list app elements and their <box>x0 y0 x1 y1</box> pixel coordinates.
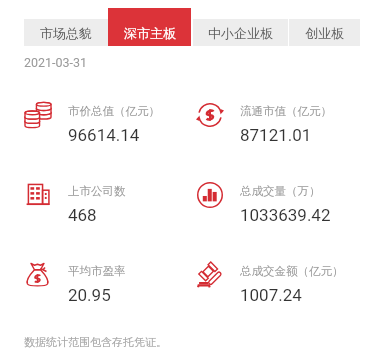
button[interactable]: 中小企业板 <box>193 19 288 46</box>
staticText: 数据统计范围包含存托凭证。 <box>24 335 167 349</box>
staticText: 中小企业板 <box>208 25 273 41</box>
button[interactable]: 市价总值（亿元） <box>24 96 192 152</box>
staticText: 1007.24 <box>240 285 302 305</box>
staticText: 上市公司数 <box>68 184 126 198</box>
staticText: 创业板 <box>305 25 344 41</box>
staticText: 深市主板 <box>124 25 176 41</box>
staticText: 市价总值（亿元） <box>68 104 160 118</box>
staticText: 1033639.42 <box>240 205 331 225</box>
staticText: 平均市盈率 <box>68 264 126 278</box>
button[interactable]: 总成交金额（亿元） <box>196 256 364 312</box>
staticText: 总成交量（万） <box>240 184 321 198</box>
staticText: 96614.14 <box>68 125 140 145</box>
button[interactable]: 深市主板 <box>108 8 191 46</box>
staticText: 市场总貌 <box>40 25 92 41</box>
button[interactable]: 总成交量（万） <box>196 176 364 232</box>
staticText: 2021-03-31 <box>24 55 88 70</box>
staticText: 总成交金额（亿元） <box>240 264 344 278</box>
staticText: 468 <box>68 205 97 225</box>
staticText: 87121.01 <box>240 125 312 145</box>
button[interactable]: 流通市值（亿元） <box>196 96 364 152</box>
staticText: 流通市值（亿元） <box>240 104 332 118</box>
staticText: 20.95 <box>68 285 111 305</box>
button[interactable]: 上市公司数 <box>24 176 192 232</box>
button[interactable]: 创业板 <box>289 19 360 46</box>
button[interactable]: 市场总貌 <box>24 19 108 46</box>
button[interactable]: 平均市盈率 <box>24 256 192 312</box>
